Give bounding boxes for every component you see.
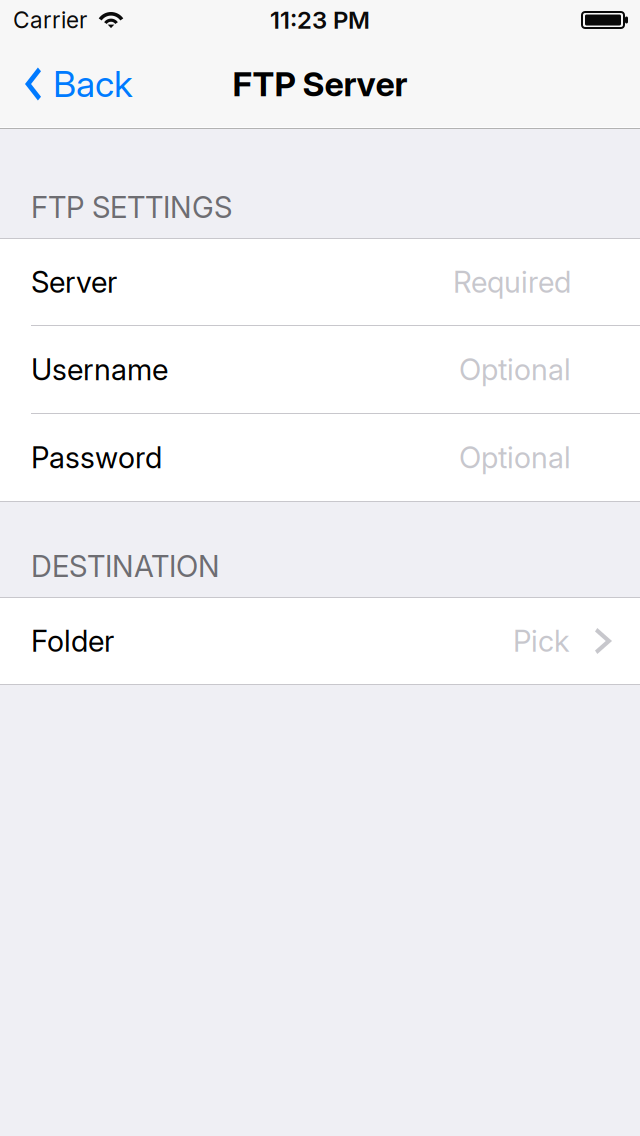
staticText: Optional: [459, 440, 571, 475]
staticText: 11:23 PM: [270, 5, 370, 34]
staticText: Carrier: [13, 6, 87, 34]
button[interactable]: Username: [0, 326, 640, 413]
staticText: Username: [31, 352, 168, 387]
button[interactable]: Back: [0, 40, 147, 128]
staticText: Folder: [31, 623, 114, 659]
button[interactable]: Folder: [0, 598, 640, 684]
staticText: Back: [53, 62, 133, 106]
staticText: Required: [453, 264, 571, 300]
staticText: Password: [31, 440, 162, 475]
button[interactable]: Password: [0, 414, 640, 501]
staticText: DESTINATION: [31, 548, 220, 584]
staticText: Optional: [459, 352, 571, 387]
staticText: Pick: [513, 623, 570, 659]
staticText: Server: [31, 264, 117, 300]
button[interactable]: Server: [0, 239, 640, 325]
staticText: FTP Server: [232, 64, 407, 104]
staticText: FTP SETTINGS: [31, 189, 232, 225]
